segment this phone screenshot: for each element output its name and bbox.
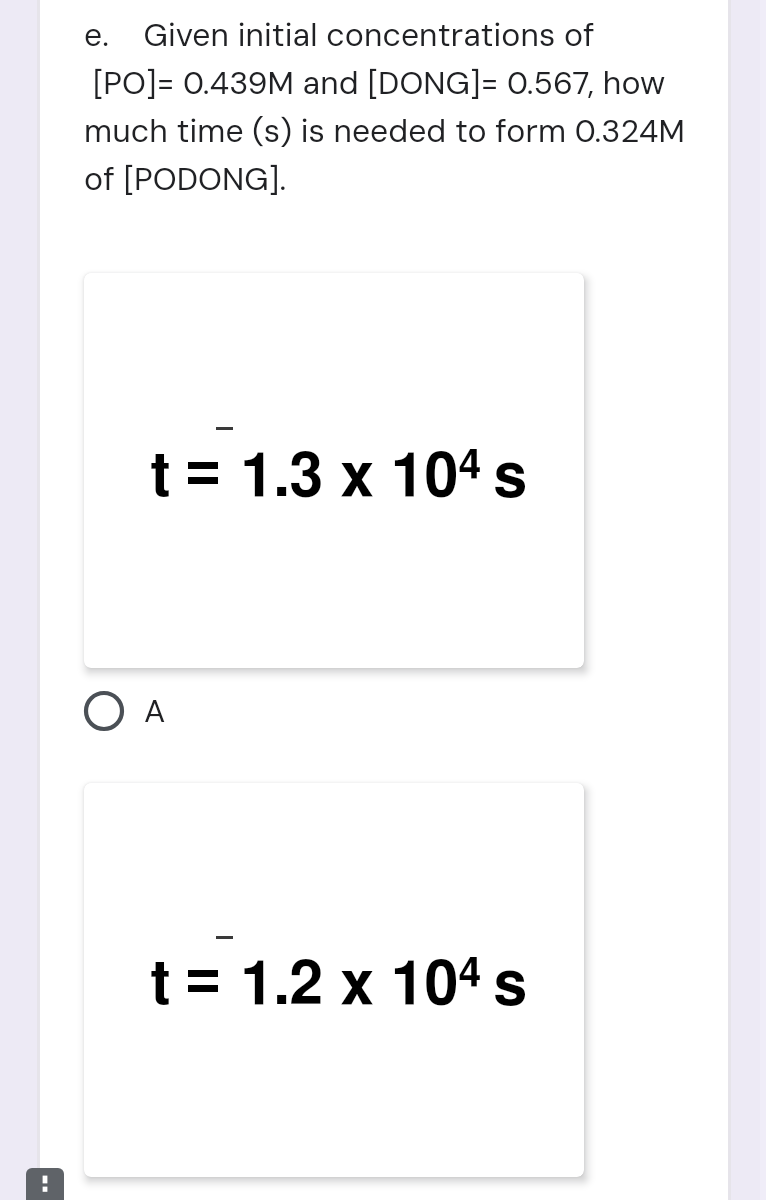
button[interactable]: t = 1.3 x 104 s [84, 273, 584, 668]
button[interactable]: t = 1.2 x 104 s [84, 783, 584, 1177]
staticText: A [144, 690, 166, 732]
staticText: t = 1.2 x 104 s [150, 954, 528, 1016]
button[interactable]: A [84, 688, 264, 734]
button[interactable]: Warning [26, 1168, 64, 1200]
staticText: e. Given initial concentrations of [PO]=… [84, 14, 685, 199]
staticText: t = 1.3 x 104 s [150, 446, 528, 508]
